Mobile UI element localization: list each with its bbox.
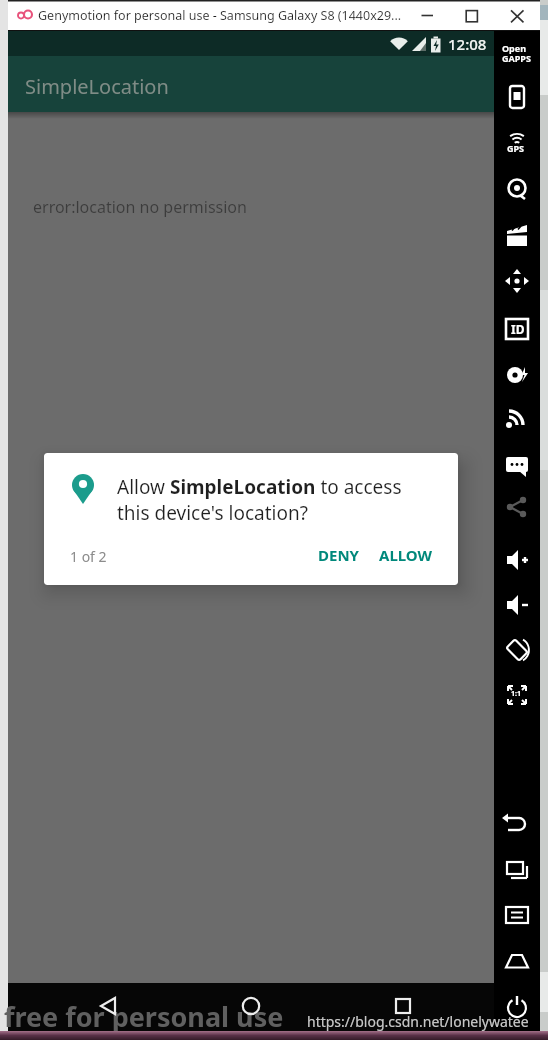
staticText: ALLOW <box>379 545 433 565</box>
button[interactable] <box>410 0 454 31</box>
button[interactable] <box>383 986 423 1026</box>
staticText: DENY <box>318 545 359 565</box>
staticText: Open GAPPS <box>502 42 531 64</box>
staticText: 1 of 2 <box>70 547 107 566</box>
button[interactable]: DENY <box>306 537 370 573</box>
staticText: SimpleLocation <box>25 73 169 100</box>
staticText: GPS <box>507 142 525 154</box>
staticText: Allow SimpleLocation to access this devi… <box>117 474 417 534</box>
staticText: error:location no permission <box>33 196 247 218</box>
staticText: 12:08 <box>448 34 487 54</box>
button[interactable]: ALLOW <box>370 537 442 573</box>
button[interactable] <box>454 0 498 31</box>
button[interactable] <box>88 986 128 1026</box>
staticText: Genymotion for personal use - Samsung Ga… <box>38 7 402 24</box>
button[interactable] <box>498 0 540 31</box>
staticText: ID <box>511 321 525 337</box>
staticText: 1:1 <box>511 689 521 699</box>
staticText: free for personal use <box>4 998 284 1035</box>
staticText: https://blog.csdn.net/lonelywatee <box>307 1012 529 1031</box>
button[interactable] <box>231 986 271 1026</box>
